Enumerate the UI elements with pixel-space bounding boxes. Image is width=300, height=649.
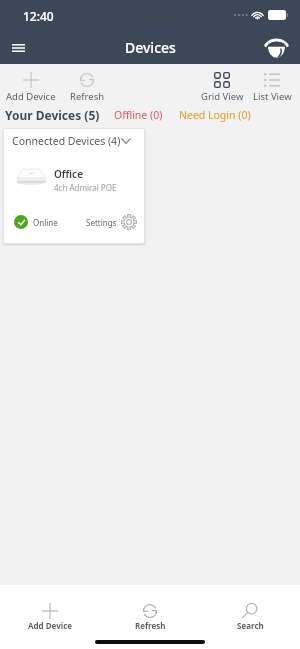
staticText: List View xyxy=(253,90,292,103)
button[interactable]: Offline (0) xyxy=(114,108,163,122)
staticText: Online xyxy=(33,217,58,228)
button[interactable]: Search xyxy=(200,603,300,629)
staticText: Settings xyxy=(86,217,117,228)
staticText: 4ch Admiral POE xyxy=(54,182,117,193)
staticText: Add Device xyxy=(6,90,56,103)
staticText: Grid View xyxy=(201,90,244,103)
staticText: Search xyxy=(237,620,264,629)
button[interactable]: Grid View xyxy=(192,66,252,106)
button[interactable]: Refresh xyxy=(100,603,200,629)
staticText: Add Device xyxy=(28,620,73,629)
button[interactable]: Connected Devices (4) xyxy=(3,128,145,244)
staticText: Connected Devices (4) xyxy=(12,134,121,148)
button[interactable]: List View xyxy=(244,66,300,106)
button[interactable]: Add Device xyxy=(0,603,100,629)
button[interactable]: Add Device xyxy=(1,66,61,106)
button[interactable]: Your Devices (5) xyxy=(5,107,100,123)
button[interactable]: Refresh xyxy=(57,66,117,106)
button[interactable]: Camera live view xyxy=(261,33,291,63)
button[interactable]: Settings xyxy=(86,214,137,230)
button[interactable]: Open navigation menu xyxy=(5,35,31,61)
staticText: 12:40 xyxy=(23,8,54,24)
staticText: Refresh xyxy=(70,90,105,103)
staticText: Refresh xyxy=(135,620,166,629)
staticText: Devices xyxy=(125,38,176,57)
button[interactable]: Need Login (0) xyxy=(179,108,251,122)
staticText: Office xyxy=(54,167,83,181)
